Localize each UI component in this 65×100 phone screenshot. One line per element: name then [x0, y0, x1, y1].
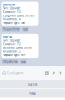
staticText: Сообщение [7, 71, 23, 75]
button[interactable]: Подробнее [1, 27, 20, 32]
staticText: Клиентов: 2 [3, 50, 21, 53]
staticText: Символ: 72 [3, 42, 21, 46]
staticText: Клиентов: 4 [3, 17, 21, 21]
staticText: Назад [29, 92, 36, 95]
button[interactable]: Назад [0, 89, 65, 98]
staticText: Ещё раз [28, 83, 37, 86]
staticText: Ещё [21, 60, 25, 63]
staticText: Текущий курс: там [3, 21, 25, 24]
staticText: Символ: 12 [3, 10, 21, 14]
button[interactable]: Ещё [20, 59, 27, 64]
button[interactable]: Сообщение [0, 66, 65, 80]
button[interactable]: Обработка [1, 59, 18, 64]
staticText: Обработка [3, 60, 17, 63]
staticText: Средняя цена: 30989 [3, 14, 35, 17]
staticText: КАРТА [3, 35, 12, 39]
button[interactable]: Ещё раз [0, 80, 65, 89]
staticText: Тип: Шрифт [3, 39, 20, 42]
staticText: Ещё [23, 28, 27, 31]
staticText: Условия цена: 3098 [3, 46, 32, 49]
button[interactable]: Ещё [22, 27, 29, 32]
staticText: ВАЛЮТА [3, 3, 15, 6]
staticText: Тип: Шрифт [3, 6, 20, 10]
staticText: Подробнее [3, 28, 19, 31]
staticText: Текущий курс: тот [3, 53, 25, 57]
